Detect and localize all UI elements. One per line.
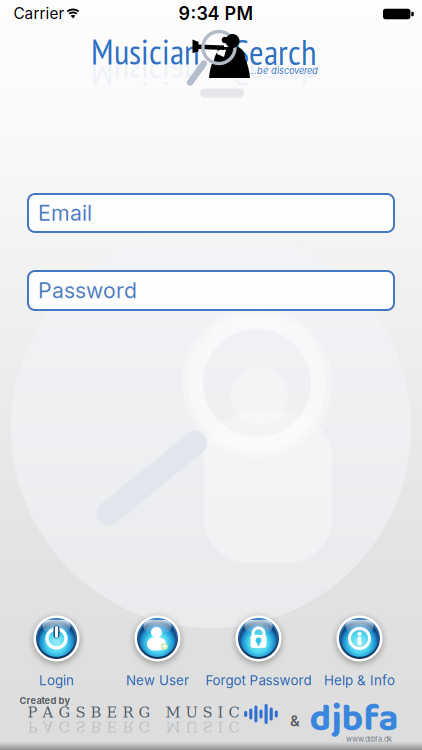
staticText: Password: [38, 278, 137, 303]
staticText: ...be discovered: [248, 65, 318, 76]
staticText: Musician: [91, 29, 200, 74]
staticText: P A G S B E R G M U S I C: [27, 718, 239, 735]
staticText: Musician: [91, 50, 200, 96]
button[interactable]: Login: [4, 615, 108, 687]
staticText: Login: [39, 672, 74, 688]
staticText: &: [290, 712, 300, 730]
staticText: www.djbfa.dk: [346, 735, 392, 743]
button[interactable]: Forgot Password: [206, 615, 310, 687]
staticText: Carrier: [13, 4, 64, 23]
staticText: Email: [38, 200, 92, 226]
staticText: Search: [234, 29, 317, 75]
button[interactable]: Password: [28, 271, 394, 310]
button[interactable]: New User: [105, 615, 209, 687]
button[interactable]: Email: [28, 194, 394, 232]
staticText: New User: [126, 672, 189, 688]
staticText: Search: [234, 51, 317, 96]
staticText: Created by: [19, 695, 70, 706]
staticText: P A G S B E R G M U S I C: [27, 704, 239, 721]
staticText: 9:34 PM: [178, 3, 253, 24]
staticText: Help & Info: [324, 672, 395, 688]
staticText: djbfa: [309, 690, 398, 749]
staticText: Forgot Password: [205, 672, 311, 688]
button[interactable]: Help & Info: [307, 615, 411, 687]
